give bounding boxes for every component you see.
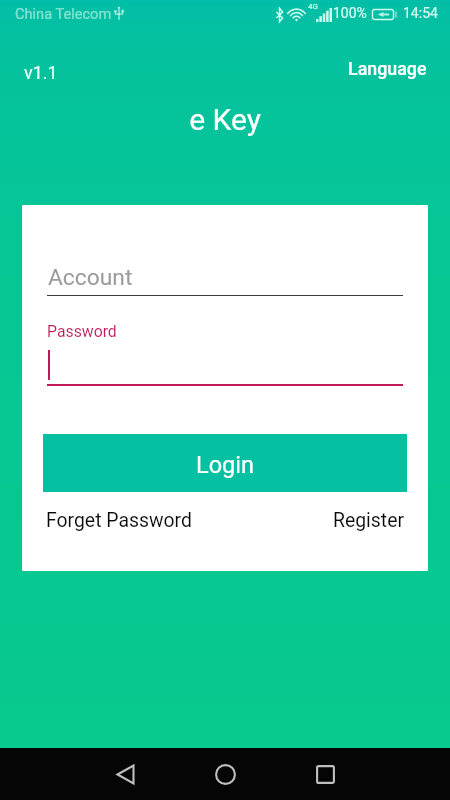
button[interactable]: v1.1 (20, 54, 62, 83)
button[interactable]: Password input field (43, 317, 407, 387)
button[interactable]: Forget Password (43, 506, 195, 535)
button[interactable]: Home (185, 748, 265, 800)
button[interactable]: Account input field (43, 253, 407, 301)
staticText: 14:54 (403, 5, 438, 21)
staticText: v1.1 (24, 62, 58, 83)
button[interactable]: Register (330, 506, 408, 535)
staticText: Language (348, 58, 427, 79)
staticText: 4G (308, 2, 318, 11)
button[interactable]: Login (43, 434, 407, 492)
staticText: e Key (0, 102, 450, 137)
staticText: Forget Password (46, 509, 192, 532)
staticText: Password (47, 322, 117, 341)
staticText: Register (333, 509, 405, 532)
button[interactable]: Back (85, 748, 165, 800)
button[interactable]: Recent apps (285, 748, 365, 800)
staticText: 100% (333, 5, 367, 21)
staticText: Login (196, 451, 254, 479)
button[interactable]: Language (344, 54, 431, 83)
staticText: Account (48, 264, 133, 291)
staticText: China Telecom (15, 5, 112, 22)
